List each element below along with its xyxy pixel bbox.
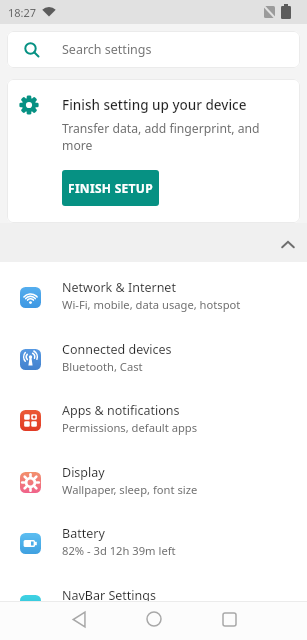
staticText: Wi-Fi, mobile, data usage, hotspot [62, 297, 241, 312]
staticText: 82% - 3d 12h 39m left [62, 543, 176, 558]
button[interactable]: Search settings [7, 31, 300, 68]
button[interactable] [216, 606, 242, 632]
staticText: Wallpaper, sleep, font size [62, 482, 198, 497]
staticText: Bluetooth, Cast [62, 359, 143, 374]
staticText: Connected devices [62, 341, 172, 358]
staticText: FINISH SETUP [68, 180, 153, 196]
staticText: Customize your navigation bar [62, 605, 224, 620]
staticText: Apps & notifications [62, 402, 180, 419]
staticText: NavBar Settings [62, 587, 156, 604]
staticText: 18:27 [8, 5, 37, 20]
staticText: Transfer data, add fingerprint, and more [62, 120, 260, 154]
button[interactable]: NavBar Settings [0, 574, 307, 636]
staticText: Display [62, 464, 105, 481]
button[interactable]: Display [0, 451, 307, 513]
button[interactable]: FINISH SETUP [62, 170, 159, 206]
button[interactable]: Apps & notifications [0, 390, 307, 451]
button[interactable]: Network & Internet [0, 266, 307, 328]
staticText: Permissions, default apps [62, 420, 198, 435]
staticText: Battery [62, 525, 105, 542]
staticText: Finish setting up your device [62, 96, 247, 114]
button[interactable] [66, 606, 92, 632]
staticText: Search settings [62, 41, 152, 58]
button[interactable] [281, 238, 295, 252]
button[interactable] [141, 606, 167, 632]
staticText: Network & Internet [62, 279, 176, 296]
button[interactable]: Connected devices [0, 328, 307, 390]
button[interactable]: Battery [0, 513, 307, 574]
